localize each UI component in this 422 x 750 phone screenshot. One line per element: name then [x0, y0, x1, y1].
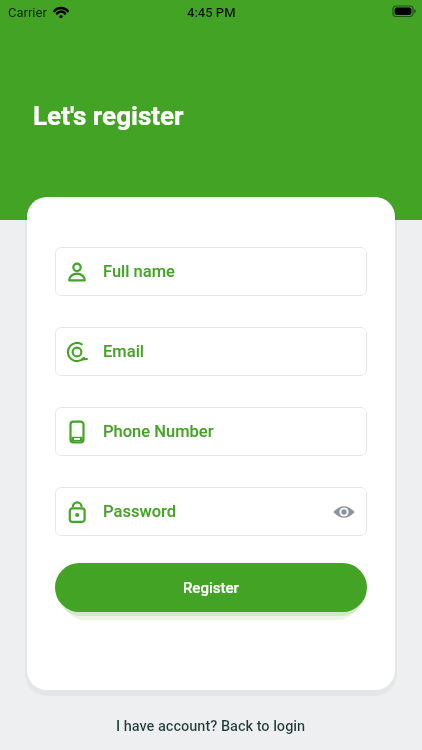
staticText: 4:45 PM: [187, 5, 236, 20]
button[interactable]: Phone Number: [55, 407, 367, 456]
button[interactable]: Full name: [55, 247, 367, 296]
button[interactable]: I have account? Back to login: [116, 718, 306, 735]
button[interactable]: Email: [55, 327, 367, 376]
staticText: I have account? Back to login: [116, 718, 306, 735]
staticText: Register: [183, 579, 239, 597]
staticText: Let's register: [33, 101, 184, 131]
staticText: Email: [103, 342, 145, 361]
staticText: Full name: [103, 262, 175, 281]
staticText: Password: [103, 502, 177, 521]
staticText: Carrier: [8, 5, 47, 20]
button[interactable]: Password: [55, 487, 367, 536]
button[interactable]: Register: [55, 563, 367, 612]
staticText: Phone Number: [103, 422, 214, 441]
